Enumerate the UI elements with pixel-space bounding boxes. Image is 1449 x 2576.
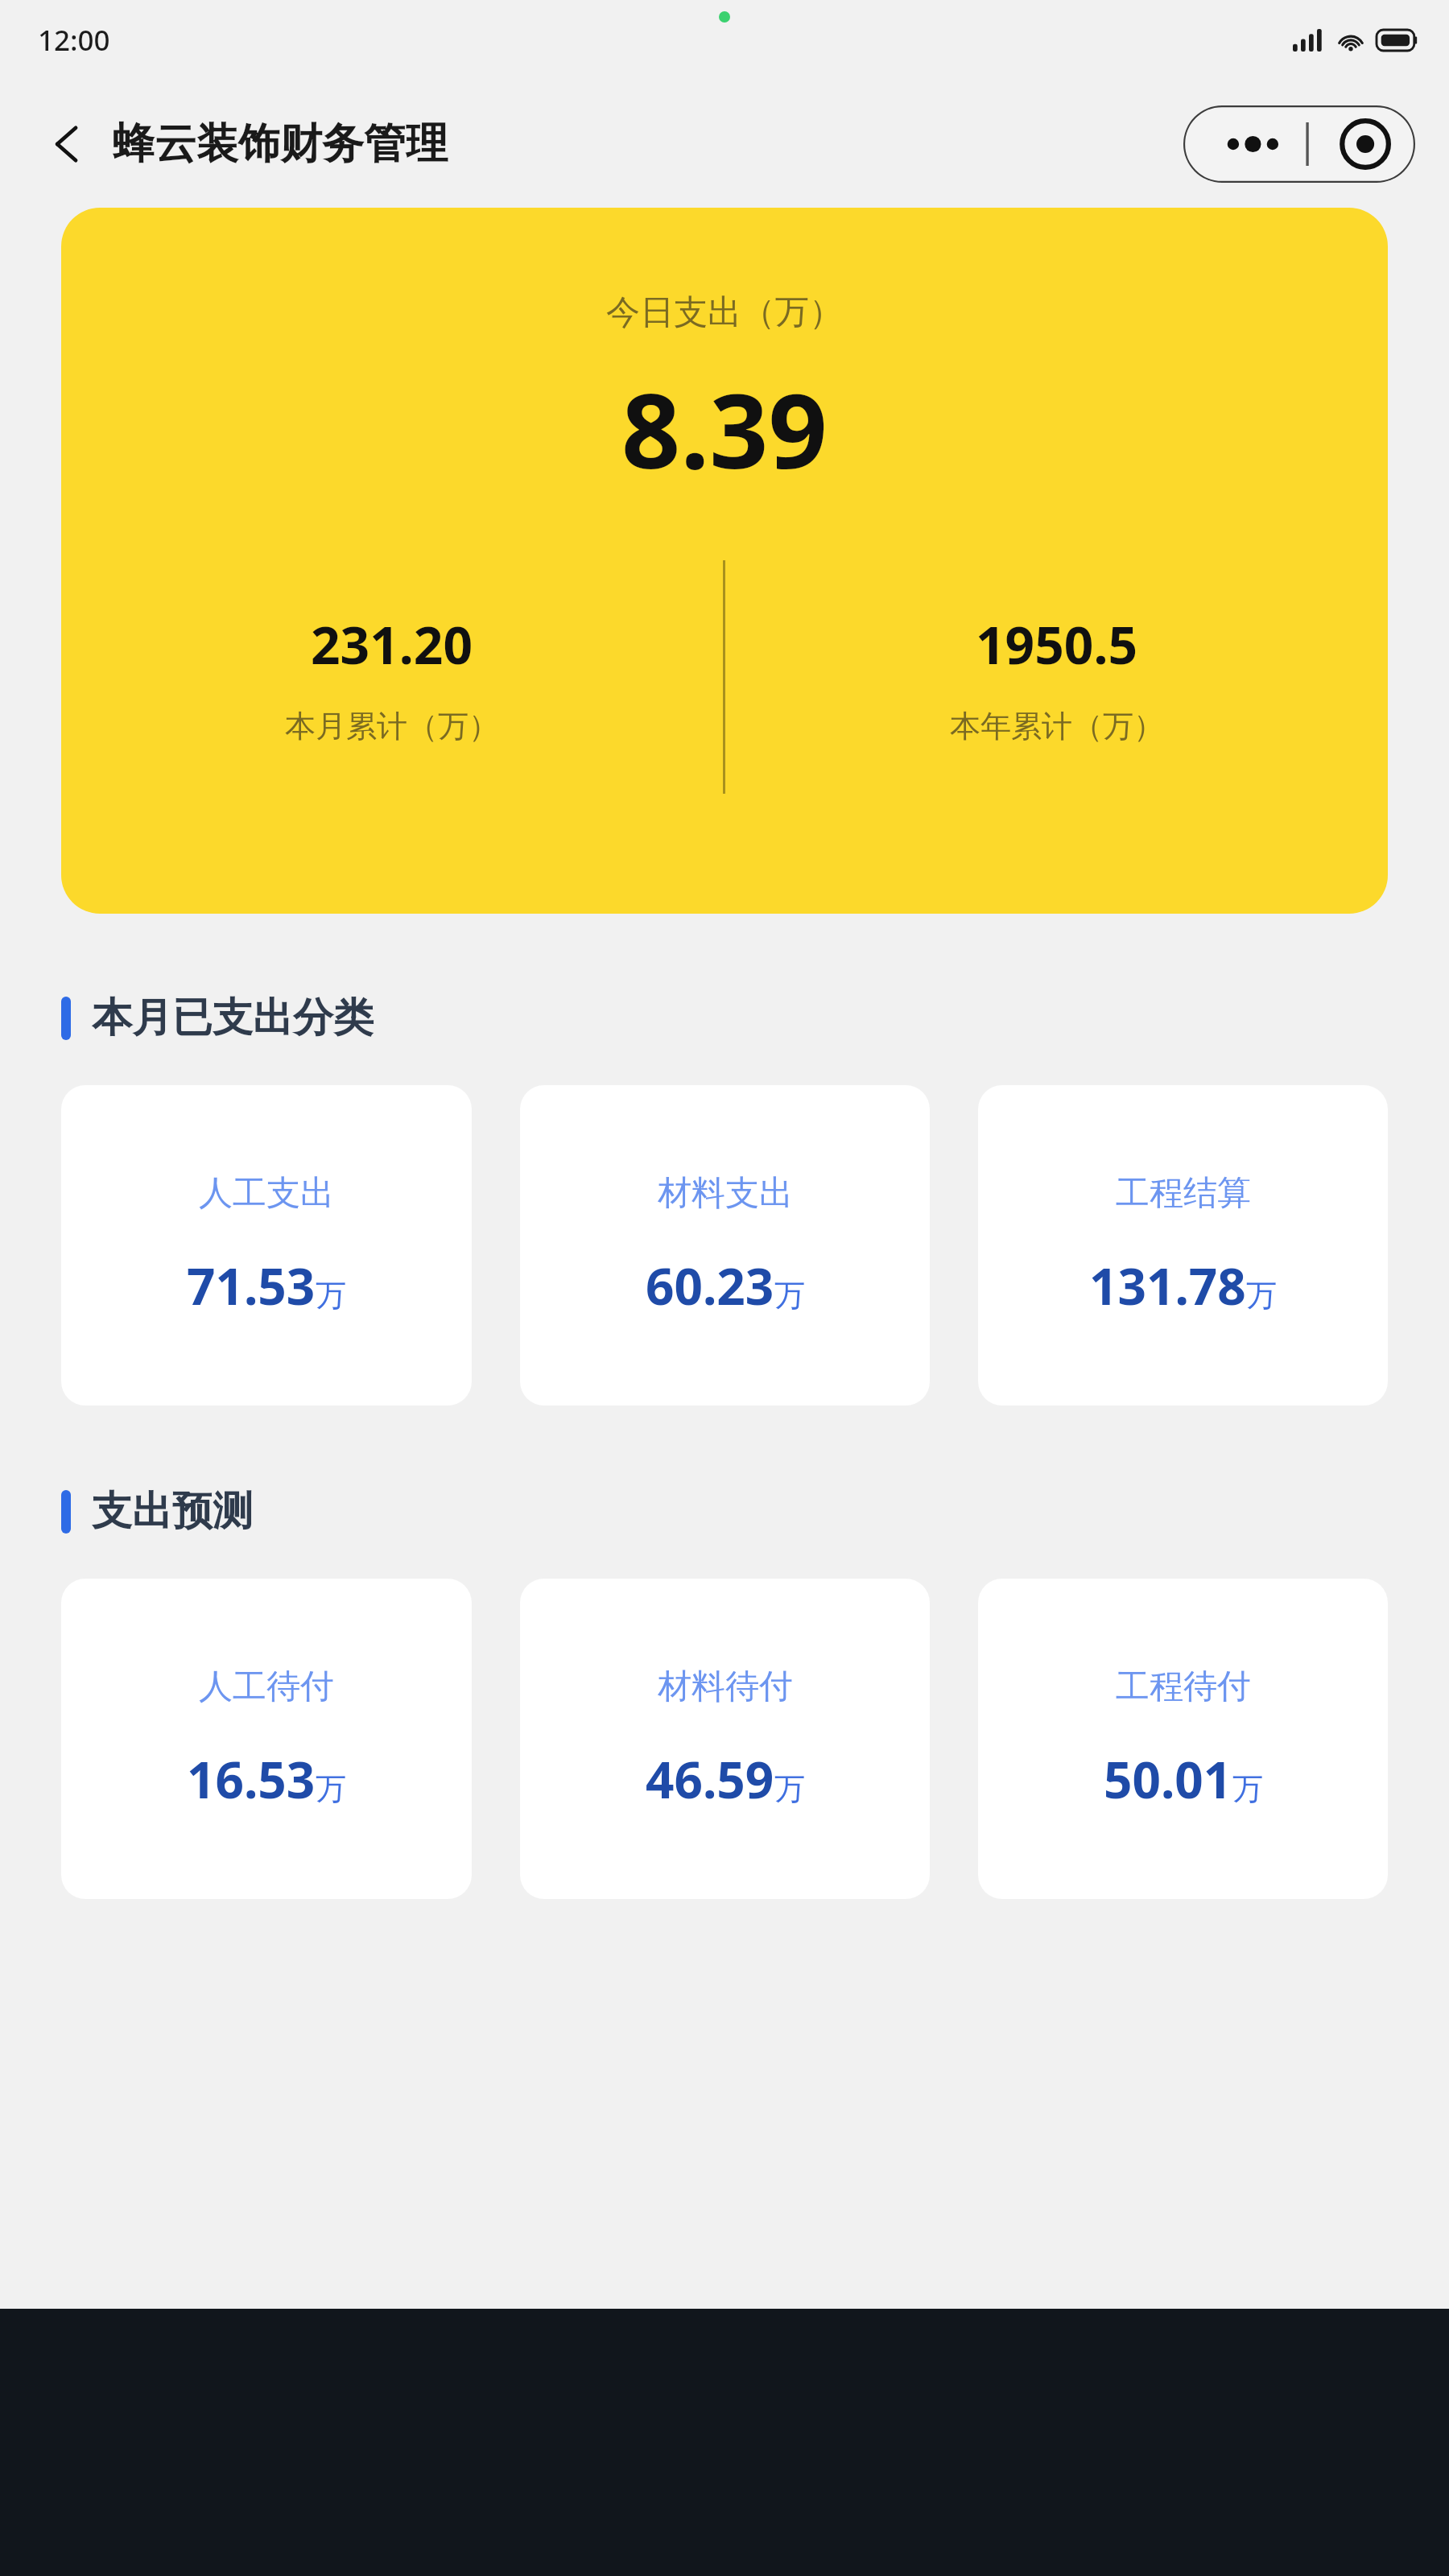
- staticText: 46.59: [646, 1745, 774, 1813]
- staticText: 1950.5: [976, 609, 1138, 679]
- staticText: 今日支出（万）: [606, 291, 843, 334]
- staticText: 71.53: [187, 1252, 316, 1319]
- button[interactable]: 人工待付: [61, 1579, 472, 1899]
- staticText: 蜂云装饰财务管理: [113, 118, 448, 171]
- button[interactable]: 材料支出: [520, 1085, 930, 1406]
- button[interactable]: Back: [29, 105, 106, 183]
- staticText: 万: [1246, 1276, 1277, 1315]
- staticText: 万: [316, 1276, 346, 1315]
- staticText: 本年累计（万）: [950, 707, 1164, 745]
- staticText: 工程结算: [1116, 1172, 1251, 1215]
- button[interactable]: 工程结算: [978, 1085, 1388, 1406]
- staticText: 本月累计（万）: [285, 707, 499, 745]
- button[interactable]: 人工支出: [61, 1085, 472, 1406]
- staticText: 12:00: [38, 21, 110, 60]
- staticText: 16.53: [187, 1745, 316, 1813]
- staticText: 8.39: [621, 358, 828, 498]
- staticText: 人工待付: [199, 1666, 334, 1708]
- staticText: 万: [774, 1769, 805, 1808]
- staticText: 万: [774, 1276, 805, 1315]
- staticText: 支出预测: [92, 1486, 253, 1537]
- button[interactable]: 工程待付: [978, 1579, 1388, 1899]
- staticText: 材料待付: [658, 1666, 793, 1708]
- button[interactable]: Menu and close: [1183, 105, 1415, 183]
- staticText: 60.23: [646, 1252, 774, 1319]
- button[interactable]: 材料待付: [520, 1579, 930, 1899]
- staticText: 万: [1232, 1769, 1263, 1808]
- staticText: 131.78: [1089, 1252, 1246, 1319]
- button[interactable]: 今日支出（万）: [61, 208, 1388, 914]
- staticText: 本月已支出分类: [92, 993, 374, 1043]
- staticText: 工程待付: [1116, 1666, 1251, 1708]
- staticText: 材料支出: [658, 1172, 793, 1215]
- staticText: 50.01: [1104, 1745, 1232, 1813]
- staticText: 231.20: [311, 609, 473, 679]
- staticText: 万: [316, 1769, 346, 1808]
- staticText: 人工支出: [199, 1172, 334, 1215]
